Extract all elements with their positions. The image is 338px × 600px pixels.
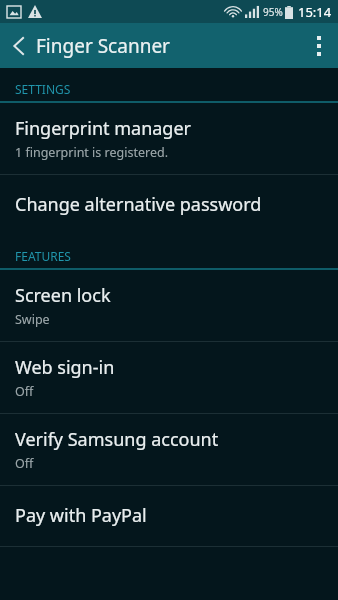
staticText: FEATURES xyxy=(15,248,71,264)
button[interactable]: Back xyxy=(0,23,36,68)
staticText: 95% xyxy=(263,5,283,19)
button[interactable]: Screen lock xyxy=(0,270,338,341)
staticText: Verify Samsung account xyxy=(15,427,219,452)
staticText: 15:14 xyxy=(298,3,332,21)
button[interactable]: Web sign-in xyxy=(0,342,338,413)
button[interactable]: Fingerprint manager xyxy=(0,103,338,174)
staticText: Off xyxy=(15,383,34,400)
staticText: Screen lock xyxy=(15,283,111,308)
staticText: 1 fingerprint is registered. xyxy=(15,144,169,161)
staticText: Swipe xyxy=(15,311,50,328)
button[interactable]: Change alternative password xyxy=(0,175,338,235)
staticText: Web sign-in xyxy=(15,355,115,380)
staticText: Fingerprint manager xyxy=(15,116,192,141)
staticText: Off xyxy=(15,455,34,472)
staticText: Finger Scanner xyxy=(36,33,170,59)
button[interactable]: Pay with PayPal xyxy=(0,486,338,546)
button[interactable]: More options xyxy=(300,23,338,68)
staticText: SETTINGS xyxy=(15,81,71,97)
staticText: Change alternative password xyxy=(15,192,262,217)
button[interactable]: Verify Samsung account xyxy=(0,414,338,485)
staticText: Pay with PayPal xyxy=(15,503,147,528)
